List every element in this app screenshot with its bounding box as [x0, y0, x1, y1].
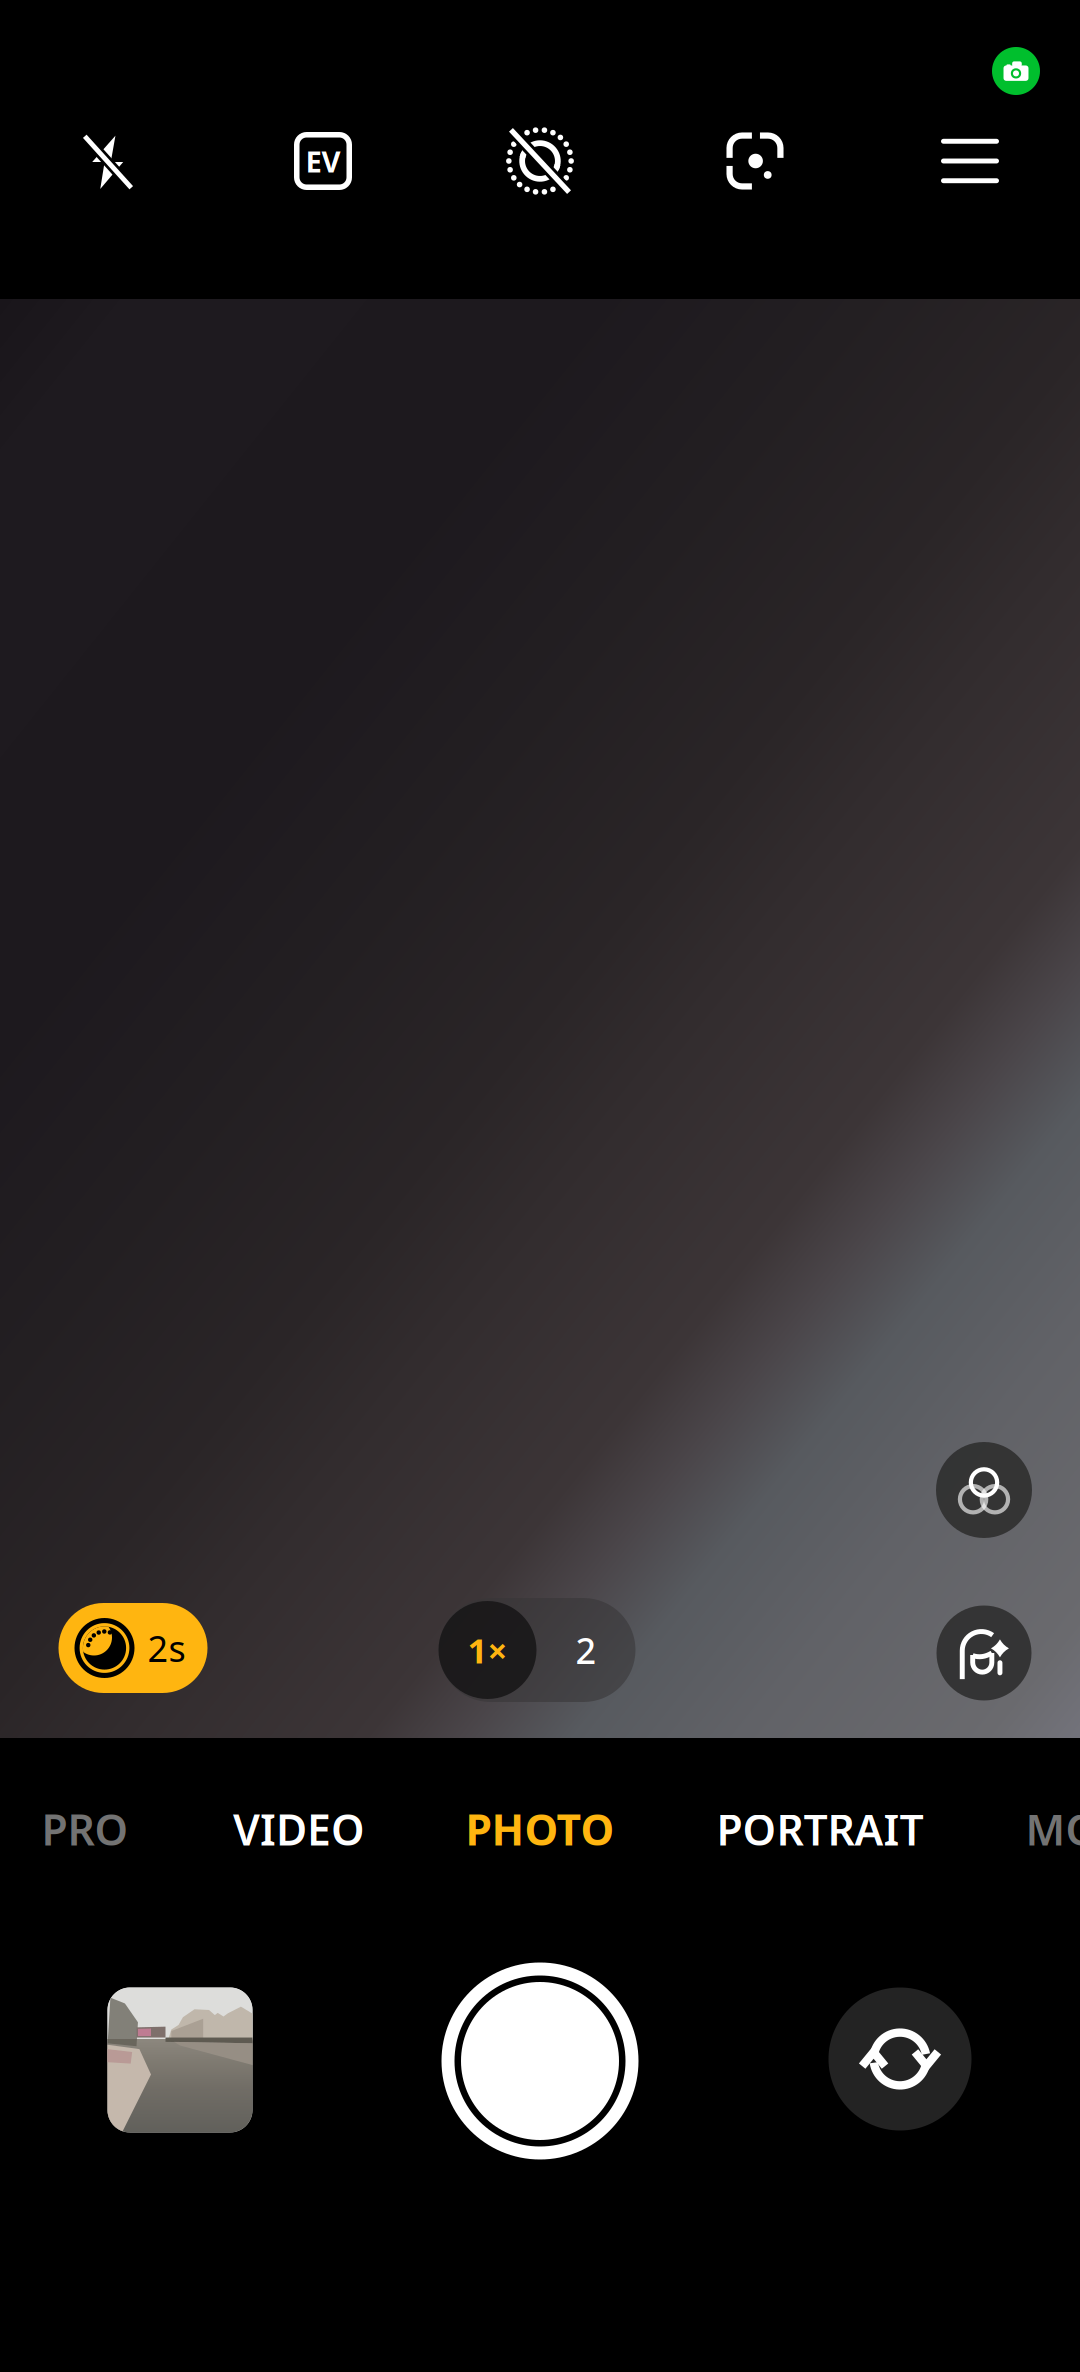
button[interactable]: Photo library	[85, 1965, 275, 2155]
button[interactable]: Exposure compensation	[253, 101, 393, 221]
button[interactable]: Night mode 2 seconds	[58, 1603, 207, 1693]
button[interactable]: Portrait retouch	[936, 1605, 1031, 1700]
button[interactable]: Night mode	[685, 101, 825, 221]
staticText: 2s	[147, 1624, 185, 1672]
staticText: EV	[305, 141, 340, 180]
button[interactable]: Live Photo off	[470, 101, 610, 221]
button[interactable]: MORE	[995, 1787, 1080, 1871]
button[interactable]: Switch camera	[828, 1987, 971, 2130]
button[interactable]: PRO	[11, 1787, 158, 1871]
staticText: 1×	[467, 1627, 507, 1673]
button[interactable]: PORTRAIT	[686, 1787, 953, 1871]
button[interactable]: 1×	[438, 1598, 536, 1702]
button[interactable]: VIDEO	[203, 1787, 395, 1871]
button[interactable]: Take photo	[435, 1956, 645, 2166]
staticText: 2	[575, 1626, 596, 1674]
button[interactable]: Flash off	[38, 102, 178, 222]
staticText: PORTRAIT	[716, 1801, 923, 1857]
staticText: VIDEO	[233, 1801, 365, 1857]
staticText: PHOTO	[465, 1801, 614, 1857]
staticText: MORE	[1025, 1801, 1080, 1857]
button[interactable]: 2	[536, 1598, 635, 1702]
button[interactable]: PHOTO	[435, 1787, 644, 1871]
button[interactable]: Photographic styles	[936, 1442, 1032, 1538]
staticText: PRO	[41, 1801, 128, 1857]
button[interactable]: More camera options	[900, 101, 1040, 221]
